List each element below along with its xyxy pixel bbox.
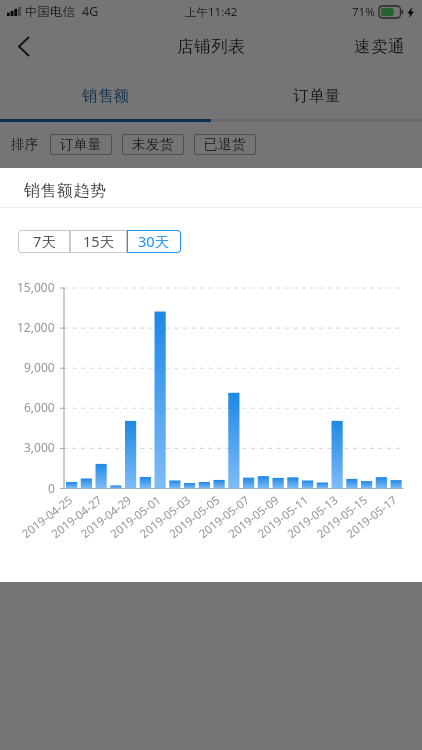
staticText: 已退货 bbox=[204, 136, 246, 153]
staticText: 订单量 bbox=[293, 86, 341, 106]
button[interactable]: 30天 bbox=[127, 230, 181, 253]
staticText: 上午11:42 bbox=[185, 4, 238, 20]
button[interactable]: Back bbox=[6, 28, 42, 64]
staticText: 未发货 bbox=[132, 136, 174, 153]
staticText: 排序 bbox=[11, 136, 38, 153]
button[interactable]: 7天 bbox=[18, 230, 70, 253]
button[interactable]: 订单量 bbox=[211, 68, 422, 119]
button[interactable]: 15天 bbox=[70, 230, 127, 253]
button[interactable]: 已退货 bbox=[194, 134, 256, 155]
button[interactable]: 未发货 bbox=[122, 134, 184, 155]
staticText: 订单量 bbox=[60, 136, 102, 153]
button[interactable]: 速卖通 bbox=[338, 29, 422, 64]
staticText: 销售额趋势 bbox=[24, 181, 107, 201]
staticText: 销售额 bbox=[82, 86, 130, 106]
button[interactable]: 订单量 bbox=[50, 134, 112, 155]
staticText: 店铺列表 bbox=[177, 36, 246, 57]
staticText: 71% bbox=[352, 4, 375, 20]
staticText: 中国电信 bbox=[25, 4, 75, 20]
staticText: 速卖通 bbox=[354, 36, 406, 57]
staticText: 7天 bbox=[33, 231, 56, 251]
staticText: 4G bbox=[82, 3, 99, 20]
staticText: 15天 bbox=[83, 231, 115, 251]
staticText: 30天 bbox=[138, 231, 170, 251]
button[interactable]: 销售额 bbox=[0, 68, 211, 119]
